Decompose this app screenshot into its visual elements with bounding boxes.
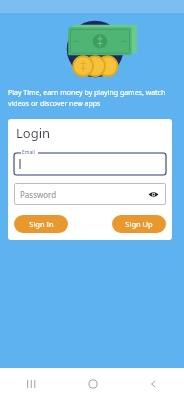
- button[interactable]: Sign In: [14, 215, 68, 233]
- staticText: Login: [16, 124, 51, 142]
- button[interactable]: Back: [123, 368, 184, 400]
- button[interactable]: Email: [14, 149, 166, 175]
- button[interactable]: Home: [62, 368, 123, 400]
- staticText: Password: [20, 189, 57, 200]
- staticText: Email: [22, 149, 35, 156]
- staticText: Sign Up: [125, 219, 153, 229]
- button[interactable]: Recents: [0, 368, 62, 400]
- button[interactable]: Show password: [146, 187, 160, 201]
- staticText: Play Time, earn money by playing games, …: [8, 88, 174, 108]
- staticText: Sign In: [29, 219, 54, 229]
- button[interactable]: Sign Up: [112, 215, 166, 233]
- button[interactable]: Password: [14, 183, 166, 205]
